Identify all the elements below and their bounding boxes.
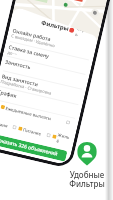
staticText: Занятость xyxy=(5,57,31,70)
staticText: Питание xyxy=(23,126,42,137)
button[interactable]: Жильё xyxy=(45,129,71,146)
staticText: Ежедневные выплаты xyxy=(5,105,52,121)
staticText: Удобные Фильтры xyxy=(69,169,105,190)
staticText: Подработка · Стажировка xyxy=(0,79,53,97)
button[interactable]: Ежедневные выплаты xyxy=(0,102,52,121)
staticText: Сбросить xyxy=(75,25,96,41)
staticText: Жильё xyxy=(56,131,71,146)
staticText: Онлайн работа xyxy=(12,26,52,42)
staticText: Показать 326 объявлений xyxy=(0,136,59,158)
button[interactable]: Онлайн работа xyxy=(10,25,93,60)
staticText: Вид занятости xyxy=(1,72,39,87)
staticText: График xyxy=(0,88,18,99)
staticText: Фильтры xyxy=(40,19,70,33)
button[interactable]: Вид занятости xyxy=(0,71,82,105)
button[interactable]: Показать 326 объявлений xyxy=(0,132,67,162)
other: Location pin xyxy=(75,142,99,166)
button[interactable]: Питание xyxy=(12,124,42,137)
button[interactable]: График xyxy=(0,87,78,119)
staticText: С выездом · Удалённо xyxy=(11,33,56,49)
button[interactable]: Сбросить xyxy=(68,23,96,41)
staticText: до ··· xyxy=(7,50,18,58)
staticText: Ставка за смену xyxy=(8,43,51,59)
button[interactable]: Премия xyxy=(0,119,8,129)
button[interactable]: Занятость xyxy=(3,57,85,90)
button[interactable]: Ставка за смену xyxy=(6,42,89,75)
